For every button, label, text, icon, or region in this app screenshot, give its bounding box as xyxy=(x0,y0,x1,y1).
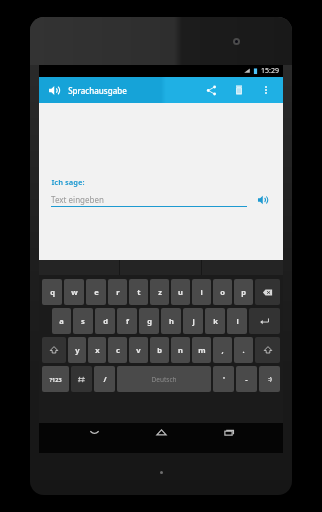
button[interactable]: r xyxy=(108,279,127,305)
staticText: ?123 xyxy=(49,376,62,383)
button[interactable]: . xyxy=(234,337,253,363)
button[interactable]: o xyxy=(213,279,232,305)
button[interactable]: l xyxy=(227,308,247,334)
button[interactable]: a xyxy=(52,308,71,334)
staticText: Ich sage: xyxy=(51,177,85,187)
staticText: a xyxy=(59,316,64,326)
staticText: :) xyxy=(268,375,272,383)
button[interactable]: e xyxy=(86,279,106,305)
staticText: p xyxy=(241,287,246,297)
staticText: v xyxy=(136,345,141,355)
button[interactable]: b xyxy=(150,337,169,363)
button[interactable]: Shift xyxy=(42,337,66,363)
staticText: Text eingeben xyxy=(51,194,104,205)
button[interactable]: - xyxy=(236,366,257,392)
button[interactable]: Settings xyxy=(71,366,92,392)
staticText: / xyxy=(103,374,107,384)
staticText: l xyxy=(236,316,239,326)
button[interactable]: Share xyxy=(201,80,221,100)
button[interactable]: w xyxy=(64,279,84,305)
staticText: h xyxy=(169,316,174,326)
button[interactable]: d xyxy=(95,308,115,334)
staticText: j xyxy=(192,316,195,326)
button[interactable]: ?123 xyxy=(42,366,69,392)
staticText: d xyxy=(103,316,108,326)
staticText: - xyxy=(245,374,248,384)
button[interactable]: q xyxy=(42,279,62,305)
button[interactable]: , xyxy=(213,337,232,363)
button[interactable]: :) xyxy=(259,366,280,392)
button[interactable]: v xyxy=(129,337,148,363)
button[interactable]: j xyxy=(183,308,203,334)
staticText: , xyxy=(221,345,224,355)
button[interactable]: g xyxy=(139,308,159,334)
button[interactable]: y xyxy=(68,337,86,363)
button[interactable]: x xyxy=(88,337,106,363)
staticText: b xyxy=(157,345,162,355)
button[interactable]: n xyxy=(171,337,190,363)
staticText: u xyxy=(178,287,183,297)
button[interactable]: App icon xyxy=(45,81,63,99)
button[interactable]: m xyxy=(192,337,211,363)
button[interactable]: / xyxy=(94,366,115,392)
staticText: Sprachausgabe xyxy=(68,85,127,96)
button[interactable]: Shift xyxy=(255,337,280,363)
button[interactable]: More options xyxy=(257,81,275,99)
staticText: z xyxy=(158,287,162,297)
button[interactable]: t xyxy=(129,279,148,305)
staticText: f xyxy=(126,316,129,326)
staticText: ' xyxy=(223,374,225,384)
button[interactable]: Hide keyboard xyxy=(81,423,107,441)
button[interactable]: p xyxy=(234,279,253,305)
staticText: s xyxy=(81,316,85,326)
button[interactable]: i xyxy=(192,279,211,305)
button[interactable]: s xyxy=(73,308,93,334)
button[interactable]: f xyxy=(117,308,137,334)
staticText: o xyxy=(220,287,225,297)
staticText: w xyxy=(71,287,78,297)
button[interactable]: u xyxy=(171,279,190,305)
button[interactable]: Deutsch xyxy=(117,366,211,392)
staticText: e xyxy=(94,287,99,297)
staticText: r xyxy=(116,287,120,297)
staticText: q xyxy=(50,287,55,297)
button[interactable]: Delete xyxy=(229,80,249,100)
staticText: k xyxy=(213,316,218,326)
staticText: y xyxy=(75,345,80,355)
button[interactable]: h xyxy=(161,308,181,334)
button[interactable]: Backspace xyxy=(255,279,280,305)
staticText: 15:29 xyxy=(261,66,279,76)
button[interactable]: z xyxy=(150,279,169,305)
button[interactable]: ' xyxy=(213,366,234,392)
button[interactable]: Enter xyxy=(249,308,280,334)
staticText: n xyxy=(178,345,183,355)
button[interactable]: k xyxy=(205,308,225,334)
staticText: x xyxy=(95,345,100,355)
button[interactable]: Speak xyxy=(255,192,271,208)
staticText: i xyxy=(200,287,203,297)
button[interactable]: Text eingeben xyxy=(51,193,247,206)
staticText: g xyxy=(147,316,152,326)
staticText: c xyxy=(116,345,120,355)
staticText: Deutsch xyxy=(151,375,177,384)
button[interactable]: Recent apps xyxy=(216,423,242,441)
button[interactable]: Home xyxy=(148,423,174,441)
button[interactable]: c xyxy=(108,337,127,363)
staticText: m xyxy=(198,345,206,355)
staticText: t xyxy=(137,287,141,297)
staticText: . xyxy=(242,345,245,355)
